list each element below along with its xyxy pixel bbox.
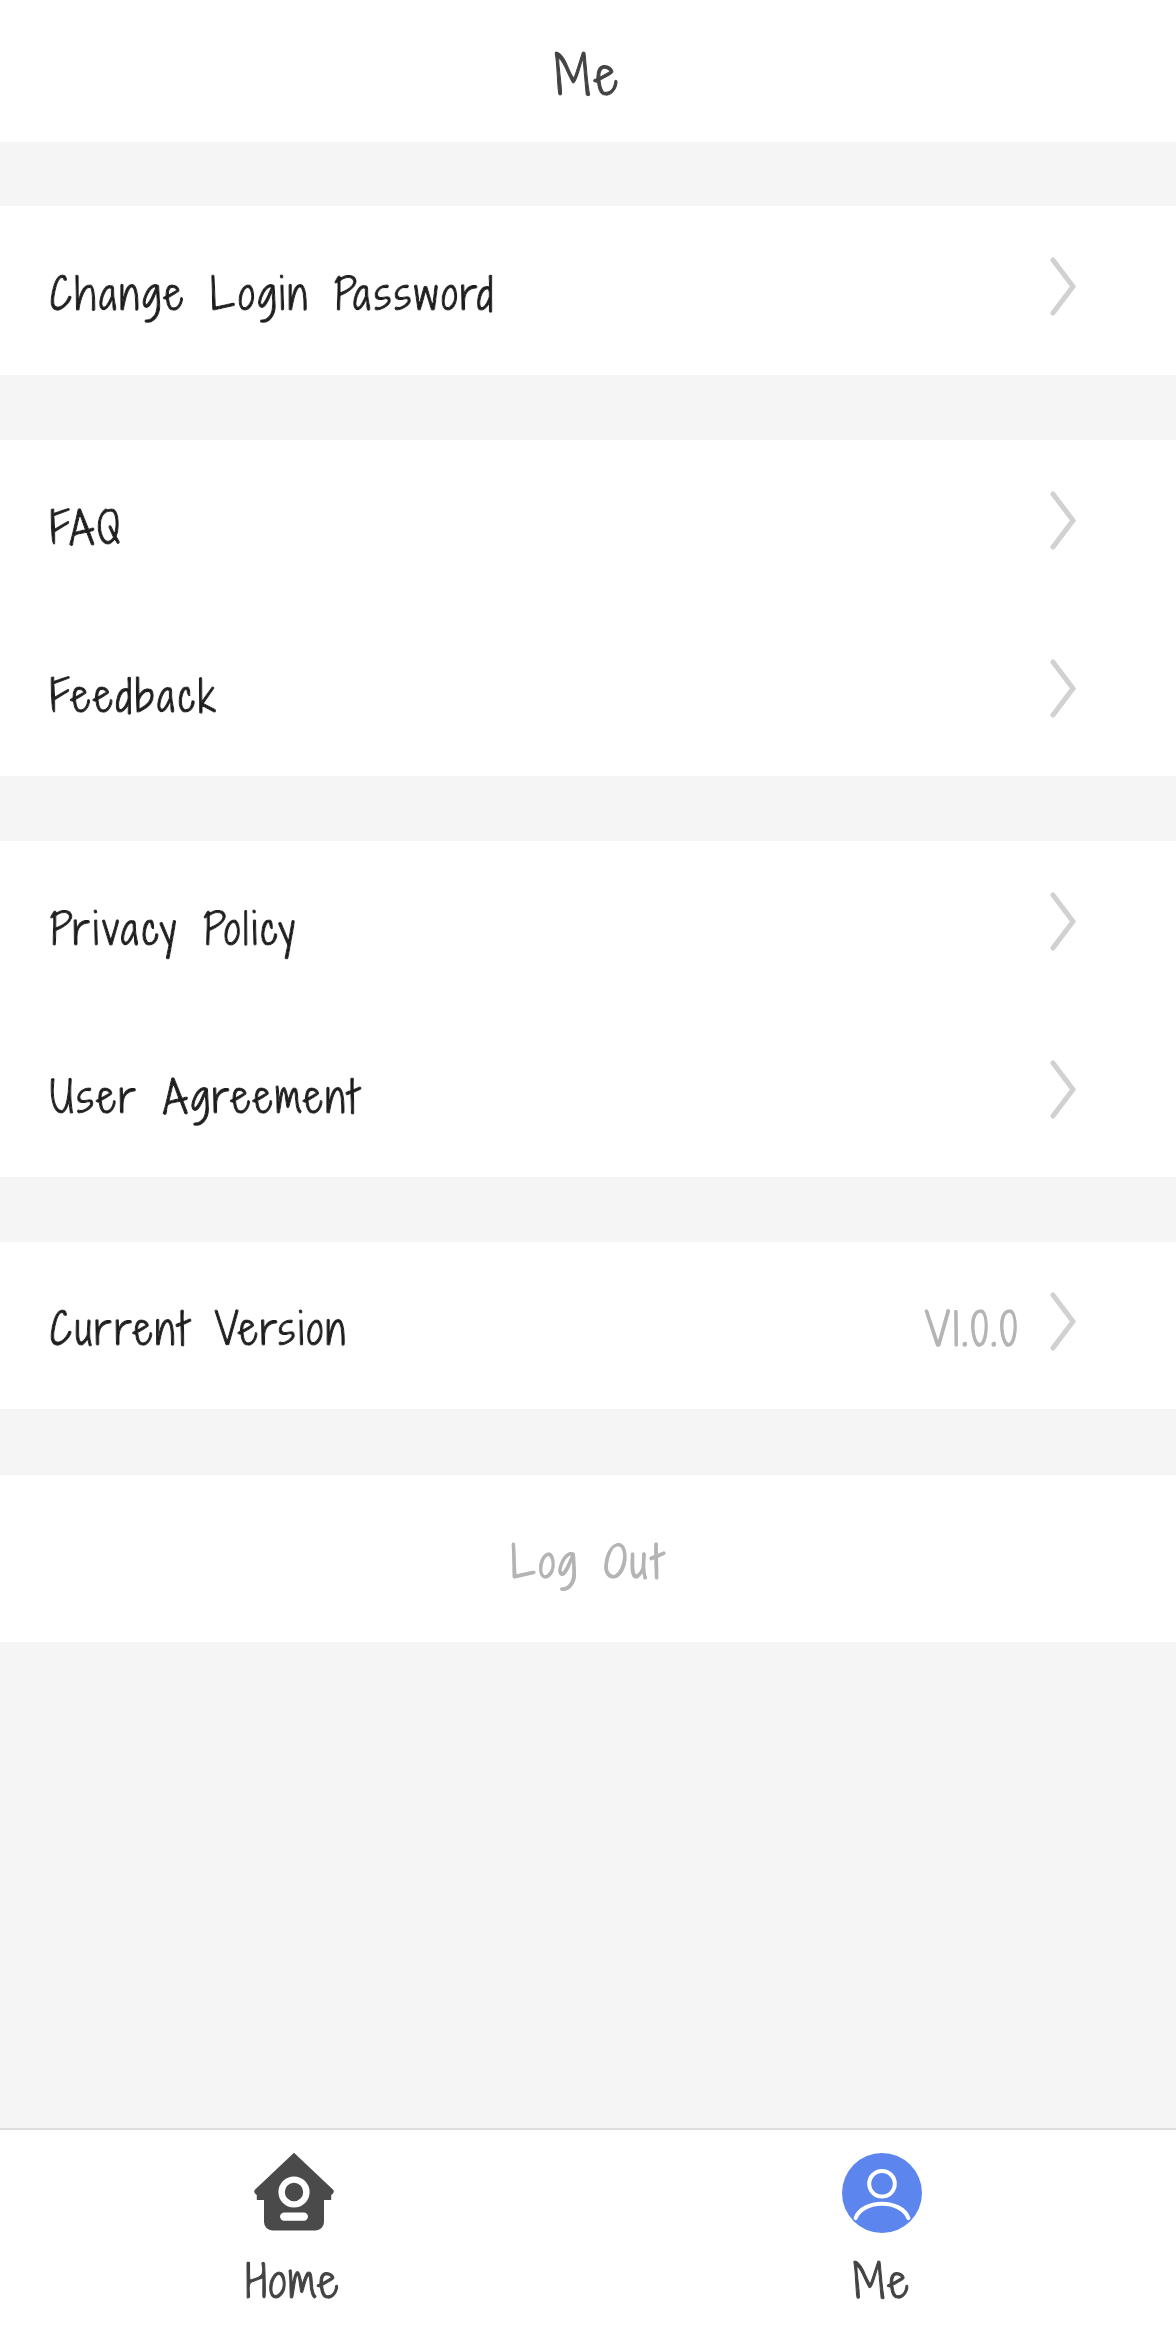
staticText: V1.0.0 [925,1298,1020,1360]
staticText: Feedback [50,666,220,725]
staticText: Me [853,2249,912,2313]
staticText: Privacy Policy [50,899,299,958]
button[interactable]: Log Out [0,1475,1176,1642]
staticText: Me [853,2249,912,2313]
staticText: Home [246,2249,342,2313]
staticText: Log Out [511,1532,666,1591]
button[interactable]: Current Version [0,1242,1176,1409]
staticText: User Agreement [50,1067,362,1126]
button[interactable]: Change Login Password [0,206,1176,375]
staticText: Me [554,39,622,112]
button[interactable]: Feedback [0,608,1176,776]
staticText: FAQ [50,498,124,557]
staticText: Current Version [50,1299,349,1358]
staticText: V1.0.0 [925,1298,1020,1360]
staticText: Home [246,2249,342,2313]
staticText: Privacy Policy [50,899,299,958]
button[interactable]: Home [0,2130,588,2325]
staticText: Current Version [50,1299,349,1358]
button[interactable]: FAQ [0,440,1176,608]
staticText: Feedback [50,666,220,725]
button[interactable]: Privacy Policy [0,841,1176,1009]
button[interactable]: Me [588,2130,1176,2325]
staticText: Change Login Password [50,264,497,323]
staticText: FAQ [50,498,124,557]
button[interactable]: User Agreement [0,1009,1176,1177]
staticText: User Agreement [50,1067,362,1126]
staticText: Change Login Password [50,264,497,323]
staticText: Log Out [511,1532,666,1591]
staticText: Me [554,39,622,112]
